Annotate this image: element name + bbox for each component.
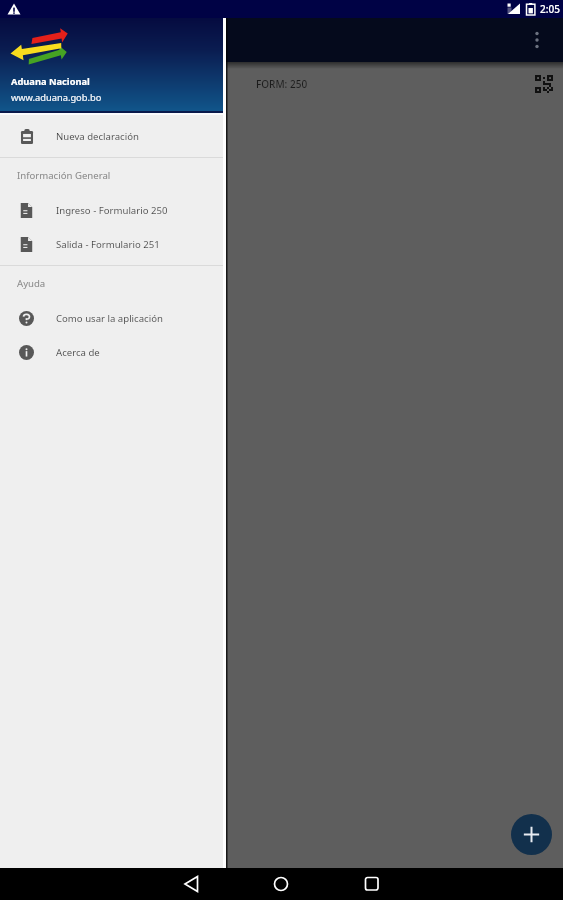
button[interactable]: Scan QR code xyxy=(531,71,557,97)
staticText: Salida - Formulario 251 xyxy=(56,238,160,251)
staticText: Aduana Nacional xyxy=(11,75,90,88)
staticText: Acerca de xyxy=(56,346,100,359)
button[interactable]: Ingreso - Formulario 250 xyxy=(0,193,226,227)
staticText: Como usar la aplicación xyxy=(56,312,163,325)
staticText: FORM: 250 xyxy=(256,77,308,91)
button[interactable]: Como usar la aplicación xyxy=(0,301,226,335)
staticText: Información General xyxy=(17,169,111,182)
staticText: 2:05 xyxy=(540,2,560,16)
staticText: Ingreso - Formulario 250 xyxy=(56,204,168,217)
button[interactable]: More options xyxy=(522,25,552,55)
staticText: Ayuda xyxy=(17,277,46,290)
button[interactable]: Nueva declaración xyxy=(0,115,226,157)
button[interactable]: Salida - Formulario 251 xyxy=(0,227,226,261)
staticText: www.aduana.gob.bo xyxy=(11,91,102,104)
button[interactable]: Acerca de xyxy=(0,335,226,369)
button[interactable]: Add new xyxy=(511,814,552,855)
staticText: Nueva declaración xyxy=(56,130,139,143)
